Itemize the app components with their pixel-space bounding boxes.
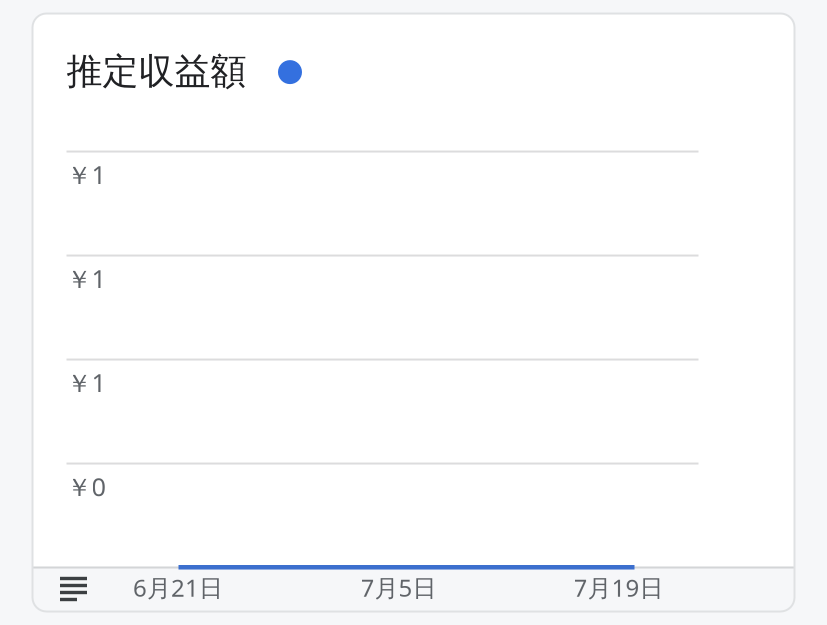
staticText: ￥0 [66,469,105,503]
button[interactable]: 推定収益額 [66,49,302,94]
button[interactable]: 6月21日 [98,565,258,610]
button[interactable]: 7月5日 [318,565,478,610]
button[interactable]: 7月19日 [538,565,698,610]
staticText: 7月5日 [360,572,436,603]
staticText: ￥1 [66,365,105,399]
staticText: ￥1 [66,261,105,295]
button[interactable]: Show data table [45,566,101,611]
staticText: 7月19日 [573,572,663,603]
staticText: ￥1 [66,157,105,191]
staticText: 推定収益額 [66,49,246,94]
staticText: 6月21日 [133,572,223,603]
